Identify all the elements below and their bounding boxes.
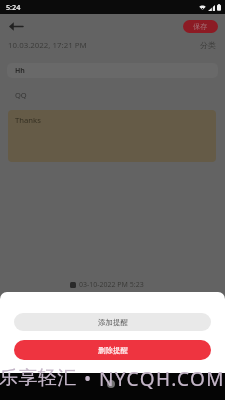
staticText: 5:24 [6, 2, 21, 12]
staticText: 乐享轻汇 [0, 366, 77, 390]
staticText: Thanks [15, 115, 41, 125]
button[interactable]: Back [6, 16, 26, 36]
staticText: 10.03.2022, 17:21 PM [8, 40, 87, 51]
staticText: 删除提醒 [98, 346, 128, 355]
staticText: 保存 [193, 22, 208, 31]
staticText: 03-10-2022 PM 5:23 [79, 280, 144, 290]
staticText: • [78, 366, 99, 392]
staticText: NYCQH.COM [99, 366, 225, 392]
button[interactable]: 添加提醒 [14, 313, 211, 331]
button[interactable]: 保存 [183, 20, 218, 33]
staticText: QQ [15, 90, 27, 100]
staticText: 添加提醒 [98, 318, 128, 327]
button[interactable]: 03-10-2022 PM 5:23 [70, 280, 144, 290]
button[interactable]: Hh [7, 63, 218, 78]
button[interactable]: 删除提醒 [14, 340, 211, 360]
staticText: Hh [15, 66, 25, 76]
button[interactable]: 分类 [200, 40, 216, 50]
